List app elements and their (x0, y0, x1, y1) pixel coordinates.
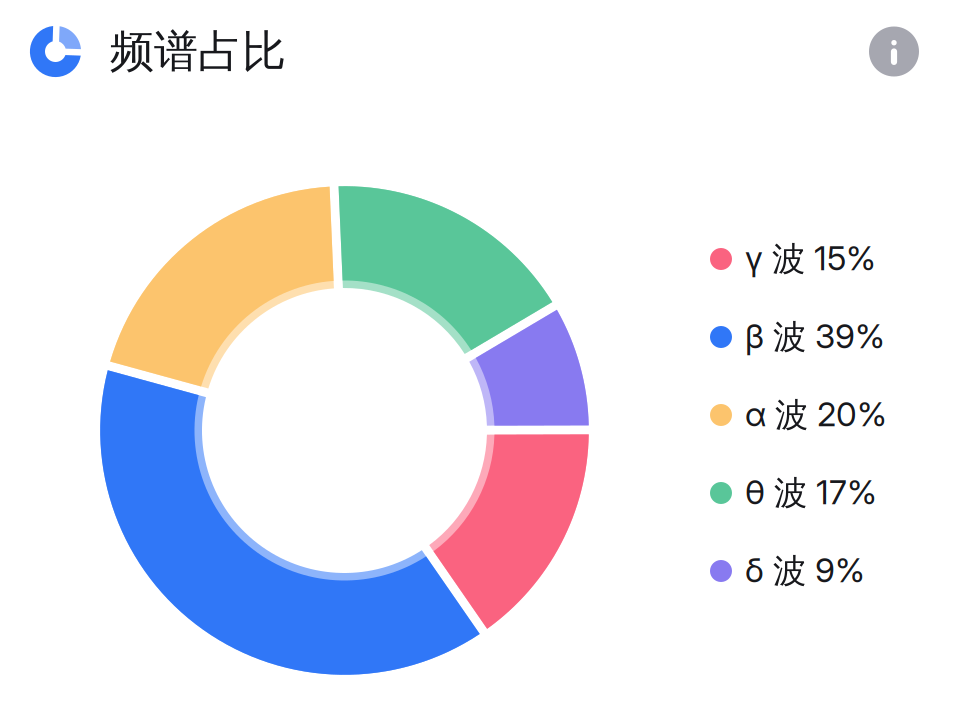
button[interactable]: 说明 (869, 26, 919, 76)
staticText: α 波 20% (745, 394, 887, 436)
staticText: β 波 39% (745, 316, 885, 358)
staticText: γ 波 15% (745, 238, 876, 280)
staticText: θ 波 17% (745, 472, 877, 514)
staticText: δ 波 9% (745, 550, 865, 592)
staticText: 频谱占比 (110, 24, 286, 79)
